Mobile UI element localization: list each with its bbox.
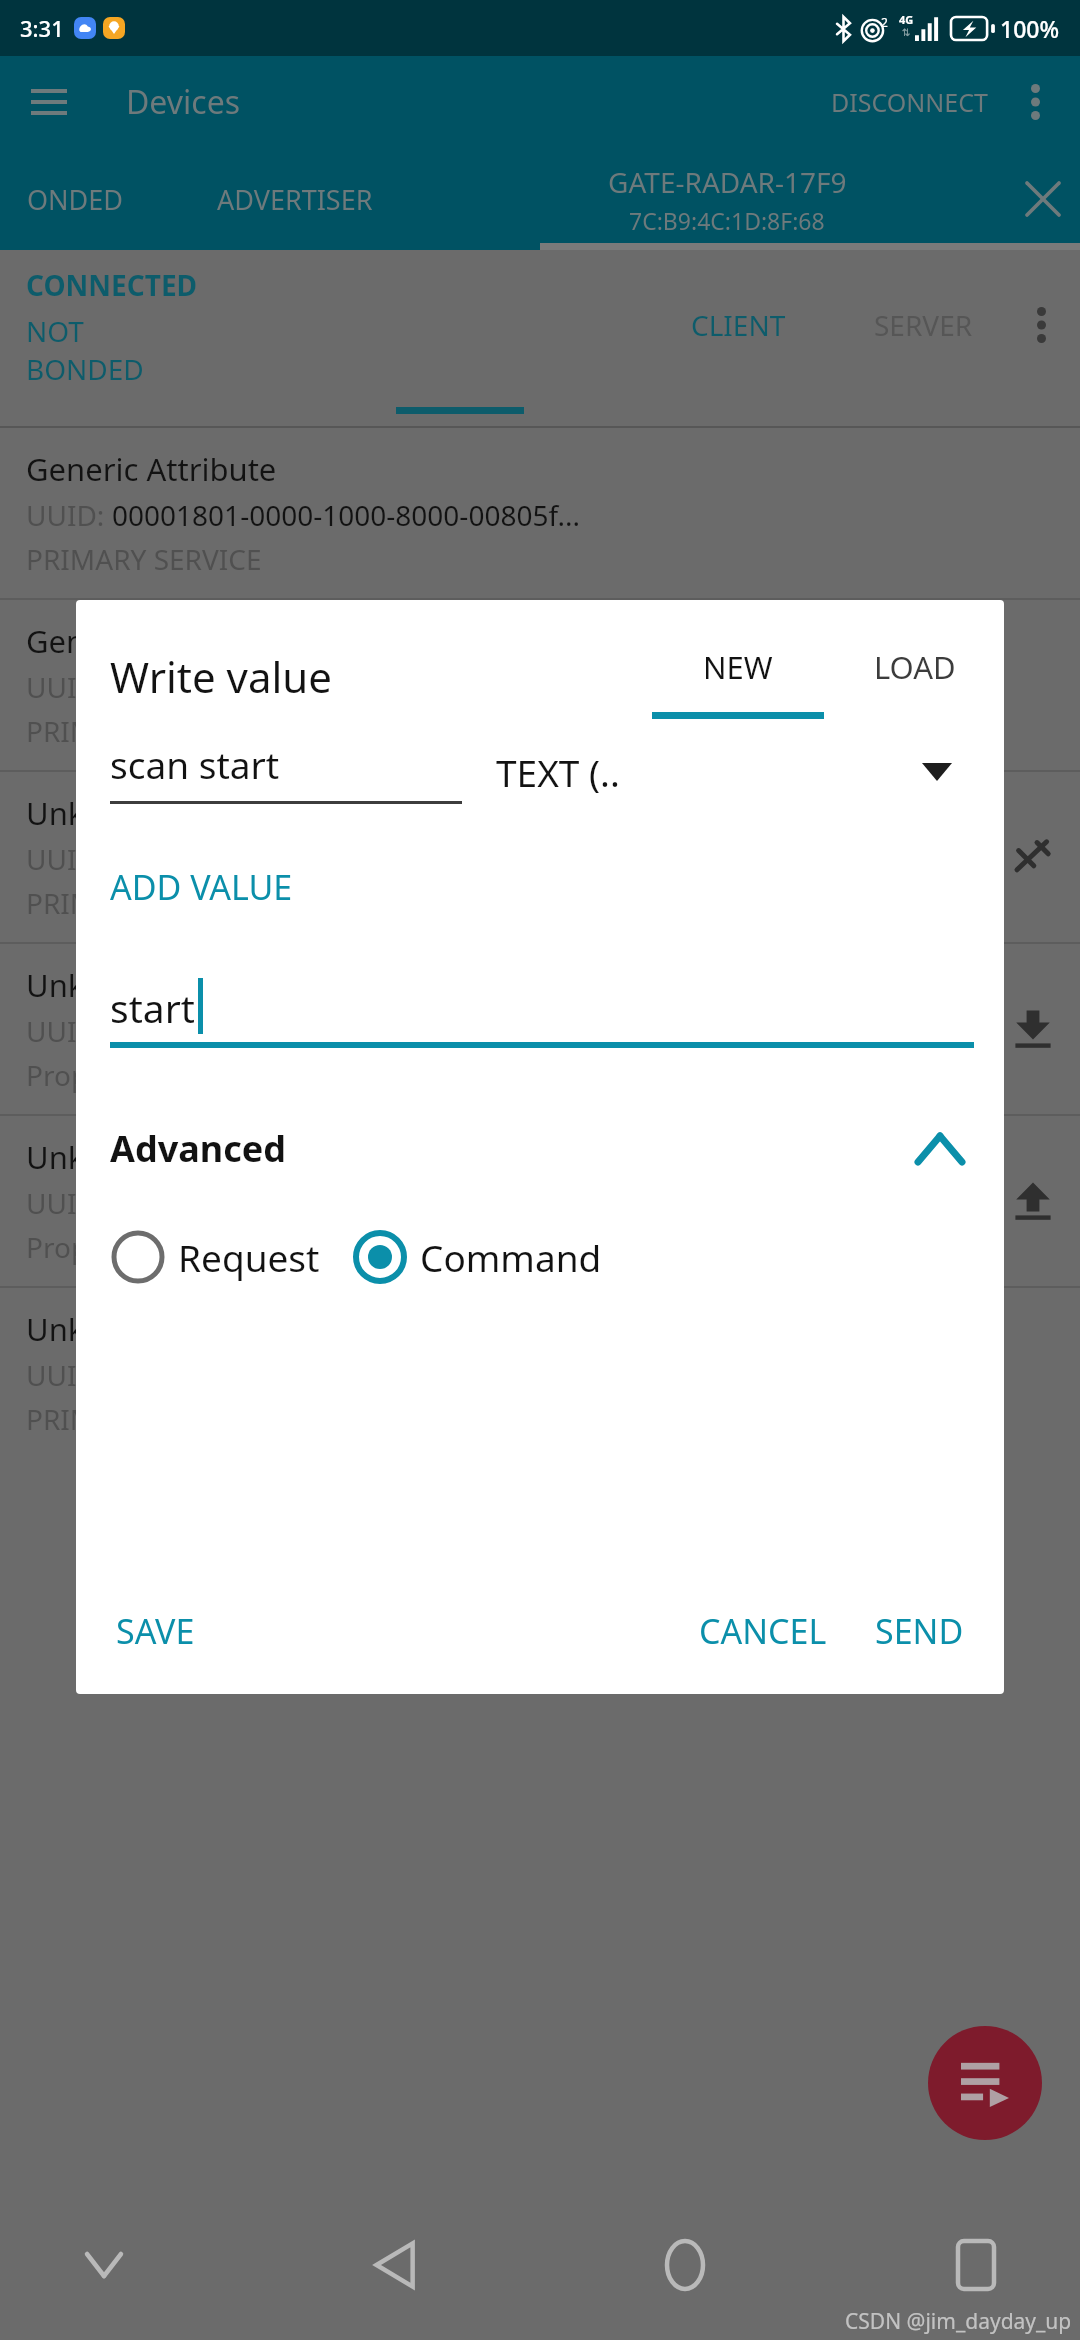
staticText: ADD VALUE — [110, 864, 293, 910]
button[interactable]: Run macro — [928, 2026, 1042, 2140]
staticText: BONDED — [26, 350, 144, 388]
staticText: Properties: — [26, 1056, 177, 1094]
button[interactable]: start — [110, 978, 974, 1048]
staticText: start — [110, 981, 195, 1034]
button[interactable]: Read value — [1002, 826, 1064, 888]
staticText: NOT — [26, 312, 84, 350]
staticText: Generic Attribute — [26, 448, 277, 490]
button[interactable]: Generic Attribute — [0, 428, 1080, 598]
staticText: SEND — [875, 1608, 964, 1654]
button[interactable]: Open navigation drawer — [20, 73, 78, 131]
button[interactable]: NEW — [644, 646, 832, 719]
staticText: 49535343-fe7d-4ae5-8fa9-9fafd2... — [112, 840, 563, 878]
button[interactable]: Close device — [1014, 170, 1072, 228]
button[interactable]: ADVERTISER — [150, 148, 440, 250]
button[interactable]: Unknown Characteristic — [0, 1116, 1080, 1286]
button[interactable]: Hide keyboard — [56, 2217, 152, 2313]
staticText: Unknown Characteristic — [26, 1136, 373, 1178]
button[interactable]: Back — [347, 2217, 443, 2313]
button[interactable]: CANCEL — [693, 1596, 833, 1666]
button[interactable]: TEXT (.. — [496, 747, 974, 797]
button[interactable]: GATE-RADAR-17F9 — [440, 148, 1080, 250]
staticText: NEW — [703, 646, 773, 688]
staticText: PRIMARY SERVICE — [26, 540, 262, 578]
button[interactable]: SERVER — [828, 296, 1018, 354]
staticText: CONNECTED — [26, 266, 198, 304]
button[interactable]: Unknown Service — [0, 1288, 1080, 1458]
staticText: Request — [178, 1232, 320, 1282]
staticText: SERVER — [874, 306, 973, 344]
staticText: UUID: — [26, 1012, 112, 1050]
button[interactable]: Write value — [1002, 1170, 1064, 1232]
staticText: Command — [420, 1232, 602, 1282]
staticText: UUID: — [26, 668, 112, 706]
staticText: Generic Access — [26, 620, 244, 662]
button[interactable]: Generic Access — [0, 600, 1080, 770]
staticText: ADVERTISER — [217, 181, 373, 218]
button[interactable]: Request — [110, 1229, 330, 1285]
staticText: 7C:B9:4C:1D:8F:68 — [629, 205, 825, 236]
staticText: 4G — [899, 12, 914, 27]
staticText: WRITE, WRITE NO RESPONSE — [177, 1228, 558, 1266]
staticText: Properties: — [26, 1228, 177, 1266]
staticText: CANCEL — [699, 1608, 827, 1654]
staticText: UUID: — [26, 1356, 112, 1394]
staticText: 49535343-1e4d-4bd9-ba61-23c647249… — [112, 1012, 637, 1050]
button[interactable]: DISCONNECT — [823, 75, 996, 129]
button[interactable]: CLIENT — [648, 296, 828, 354]
staticText: TEXT (.. — [496, 747, 620, 797]
button[interactable]: Read value — [1002, 998, 1064, 1060]
staticText: 00001800-0000-1000-8000-00805f... — [112, 668, 581, 706]
staticText: DISCONNECT — [831, 85, 988, 119]
staticText: Write value — [110, 648, 332, 705]
staticText: UUID: — [26, 840, 112, 878]
staticText: scan start — [110, 739, 280, 789]
button[interactable]: More options — [1018, 302, 1064, 348]
staticText: Unknown Service — [26, 1308, 277, 1350]
staticText: PRIMARY SERVICE — [26, 712, 262, 750]
button[interactable]: ADD VALUE — [110, 860, 293, 914]
staticText: Unknown Service — [26, 792, 277, 834]
staticText: ⇅ — [902, 27, 911, 39]
button[interactable]: SEND — [869, 1596, 970, 1666]
staticText: UUID: — [26, 496, 112, 534]
button[interactable]: Home — [637, 2217, 733, 2313]
button[interactable]: Command — [352, 1229, 612, 1285]
button[interactable]: More options — [1010, 77, 1060, 127]
staticText: 100% — [1000, 13, 1060, 44]
button[interactable]: ONDED — [0, 148, 150, 250]
staticText: CLIENT — [691, 306, 786, 344]
button[interactable]: SAVE — [110, 1596, 201, 1666]
button[interactable]: scan start — [110, 739, 462, 804]
staticText: 3:31 — [20, 13, 64, 43]
staticText: 2 — [881, 14, 888, 30]
staticText: CSDN @jim_dayday_up — [845, 2307, 1072, 2336]
button[interactable]: Unknown Service — [0, 772, 1080, 942]
button[interactable]: Advanced — [76, 1124, 1004, 1173]
staticText: PRIMARY SERVICE — [26, 884, 262, 922]
button[interactable]: LOAD — [866, 646, 964, 688]
staticText: Unknown Characteristic — [26, 964, 373, 1006]
button[interactable]: Unknown Characteristic — [0, 944, 1080, 1114]
button[interactable]: Recent apps — [928, 2217, 1024, 2313]
staticText: 00001801-0000-1000-8000-00805f... — [112, 496, 581, 534]
staticText: LOAD — [874, 646, 956, 688]
staticText: Advanced — [110, 1124, 287, 1173]
staticText: ONDED — [27, 181, 124, 218]
staticText: UUID: — [26, 1184, 112, 1222]
staticText: Devices — [126, 80, 241, 124]
staticText: GATE-RADAR-17F9 — [608, 163, 847, 201]
staticText: SAVE — [116, 1608, 195, 1654]
staticText: PRIMARY SERVICE — [26, 1400, 262, 1438]
